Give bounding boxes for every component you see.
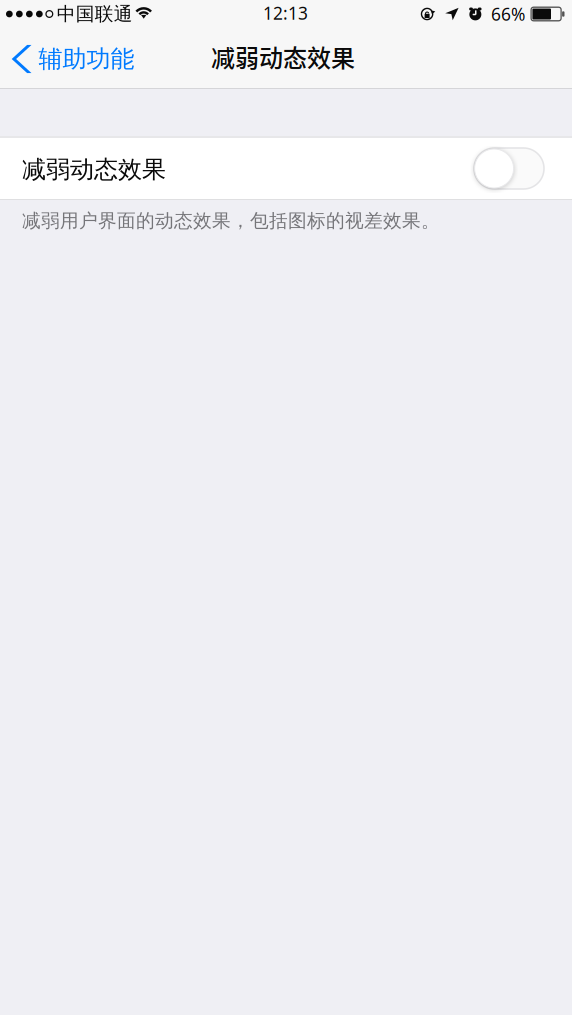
button[interactable]: 辅助功能 — [0, 30, 146, 88]
staticText: 中国联通 — [57, 2, 133, 26]
staticText: 减弱动态效果 — [211, 39, 355, 74]
staticText: 减弱动态效果 — [22, 154, 166, 185]
staticText: 辅助功能 — [38, 44, 134, 74]
staticText: 减弱用户界面的动态效果，包括图标的视差效果。 — [22, 209, 440, 232]
button[interactable] — [474, 148, 544, 189]
staticText: 66% — [491, 2, 525, 26]
staticText: 12:13 — [263, 1, 308, 25]
